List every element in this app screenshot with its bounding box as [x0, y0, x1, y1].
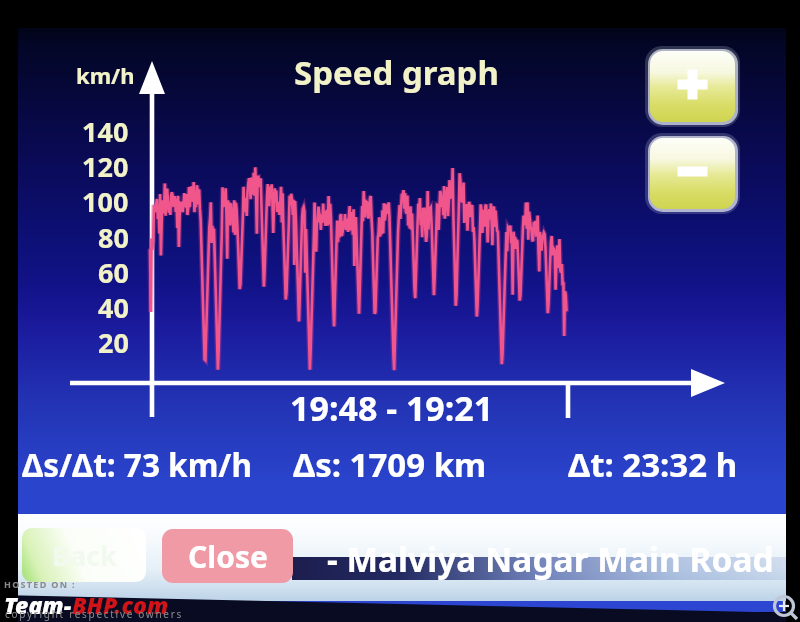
- staticText: Close: [188, 536, 268, 577]
- staticText: - Malviya Nagar Main Road: [327, 536, 774, 582]
- staticText: 20: [98, 324, 129, 361]
- staticText: 60: [98, 254, 129, 291]
- staticText: Back: [52, 537, 117, 574]
- staticText: 120: [82, 148, 129, 185]
- staticText: Δs: 1709 km: [293, 442, 487, 487]
- staticText: 80: [98, 219, 129, 256]
- button[interactable]: Back: [22, 528, 146, 582]
- staticText: Team-: [4, 589, 72, 620]
- staticText: HOSTED ON :: [4, 578, 76, 590]
- button[interactable]: Close: [162, 529, 293, 583]
- button[interactable]: Zoom image: [770, 594, 800, 622]
- staticText: km/h: [76, 60, 135, 90]
- staticText: Δt: 23:32 h: [568, 442, 738, 487]
- staticText: 140: [82, 113, 129, 150]
- staticText: BHP.com: [72, 589, 169, 620]
- staticText: copyright respective owners: [5, 607, 183, 621]
- staticText: 19:48 - 19:21: [290, 385, 494, 431]
- staticText: 100: [82, 183, 129, 220]
- button[interactable]: Zoom in: [650, 51, 735, 122]
- staticText: Speed graph: [294, 50, 499, 95]
- staticText: Δs/Δt: 73 km/h: [22, 443, 252, 486]
- button[interactable]: Zoom out: [650, 138, 735, 209]
- staticText: 40: [98, 289, 129, 326]
